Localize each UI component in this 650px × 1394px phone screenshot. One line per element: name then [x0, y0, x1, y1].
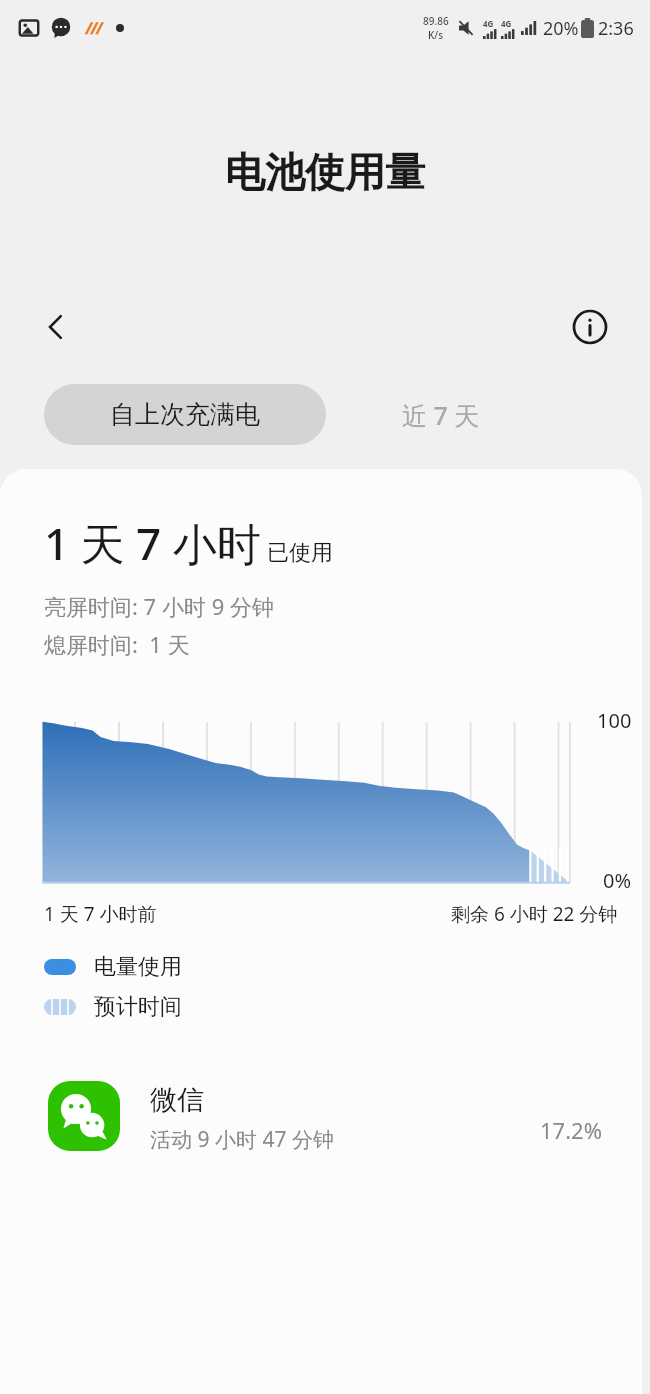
staticText: 0%: [603, 867, 632, 894]
staticText: 微信: [150, 1083, 204, 1117]
button[interactable]: Back: [30, 301, 82, 353]
button[interactable]: Information: [564, 301, 616, 353]
staticText: 4G: [483, 18, 494, 29]
staticText: 89.86: [423, 14, 449, 28]
staticText: 1 天 7 小时前: [44, 901, 157, 927]
staticText: 20%: [543, 16, 579, 41]
staticText: 100: [597, 707, 632, 734]
staticText: 4G: [501, 18, 512, 29]
staticText: 剩余 6 小时 22 分钟: [451, 901, 618, 927]
staticText: 电量使用: [94, 953, 182, 981]
staticText: 已使用: [267, 539, 333, 567]
staticText: 电池使用量: [225, 147, 425, 197]
staticText: 预计时间: [94, 993, 182, 1021]
staticText: 亮屏时间: 7 小时 9 分钟: [44, 591, 274, 621]
button[interactable]: 自上次充满电: [44, 384, 326, 445]
staticText: 2:36: [598, 16, 634, 41]
staticText: K/s: [428, 28, 444, 42]
staticText: 17.2%: [540, 1115, 602, 1145]
staticText: 自上次充满电: [110, 399, 260, 430]
button[interactable]: 微信: [0, 1067, 642, 1151]
staticText: 近 7 天: [402, 398, 480, 432]
staticText: 活动 9 小时 47 分钟: [150, 1125, 334, 1151]
staticText: 1 天 7 小时: [44, 513, 261, 573]
staticText: 熄屏时间: 1 天: [44, 629, 190, 659]
button[interactable]: 近 7 天: [326, 384, 556, 445]
